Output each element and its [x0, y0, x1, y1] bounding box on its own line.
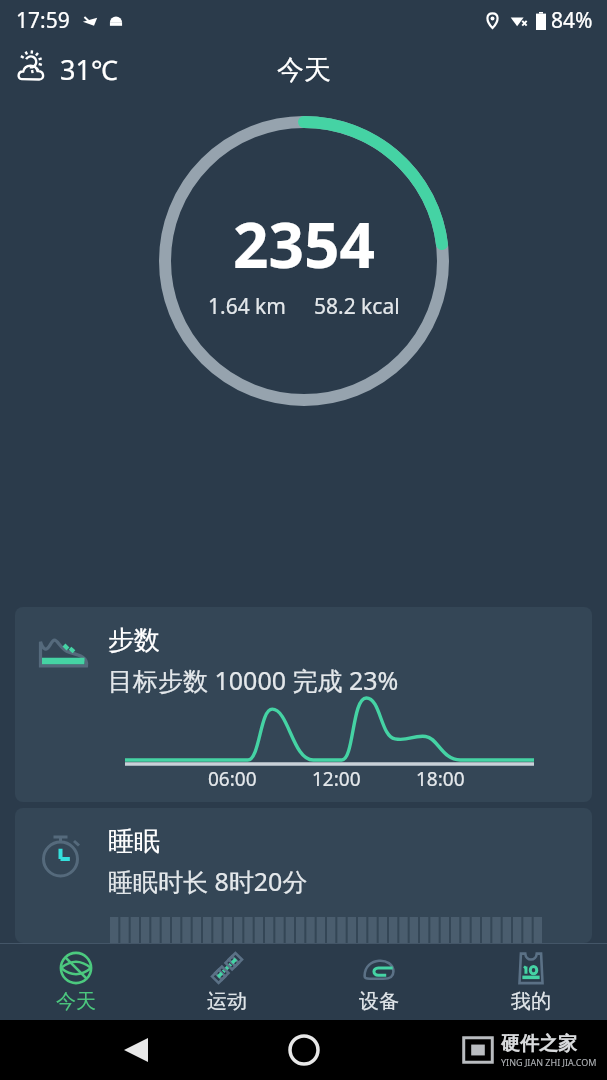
button[interactable]: 设备	[303, 944, 455, 1020]
button[interactable]: 今天	[0, 944, 151, 1020]
staticText: 运动	[207, 989, 247, 1014]
staticText: 我的	[511, 989, 551, 1014]
staticText: 今天	[277, 53, 331, 87]
other: 设备	[361, 950, 397, 986]
staticText: 58.2 kcal	[314, 292, 400, 321]
staticText: 18:00	[416, 766, 465, 792]
staticText: 84%	[551, 6, 593, 35]
staticText: 31℃	[60, 51, 118, 88]
staticText: 设备	[359, 989, 399, 1014]
staticText: 17:59	[16, 6, 70, 35]
staticText: 目标步数 10000 完成 23%	[108, 663, 399, 697]
staticText: 2354	[233, 202, 375, 286]
staticText: 步数	[108, 624, 160, 657]
staticText: 06:00	[208, 766, 257, 792]
other: 今天	[58, 950, 94, 986]
staticText: 今天	[56, 989, 96, 1014]
button[interactable]: 睡眠	[15, 808, 592, 943]
staticText: 睡眠	[108, 825, 160, 858]
staticText: 1.64 km	[208, 292, 286, 321]
button[interactable]: 我的	[455, 944, 607, 1020]
staticText: 12:00	[312, 766, 361, 792]
staticText: 硬件之家	[501, 1032, 577, 1056]
other: 我的	[513, 950, 549, 986]
button[interactable]: 运动	[151, 944, 303, 1020]
other: 运动	[209, 950, 245, 986]
button[interactable]: 步数	[15, 607, 592, 802]
staticText: 睡眠时长 8时20分	[108, 864, 308, 898]
staticText: YING JIAN ZHI JIA.COM	[501, 1056, 597, 1068]
